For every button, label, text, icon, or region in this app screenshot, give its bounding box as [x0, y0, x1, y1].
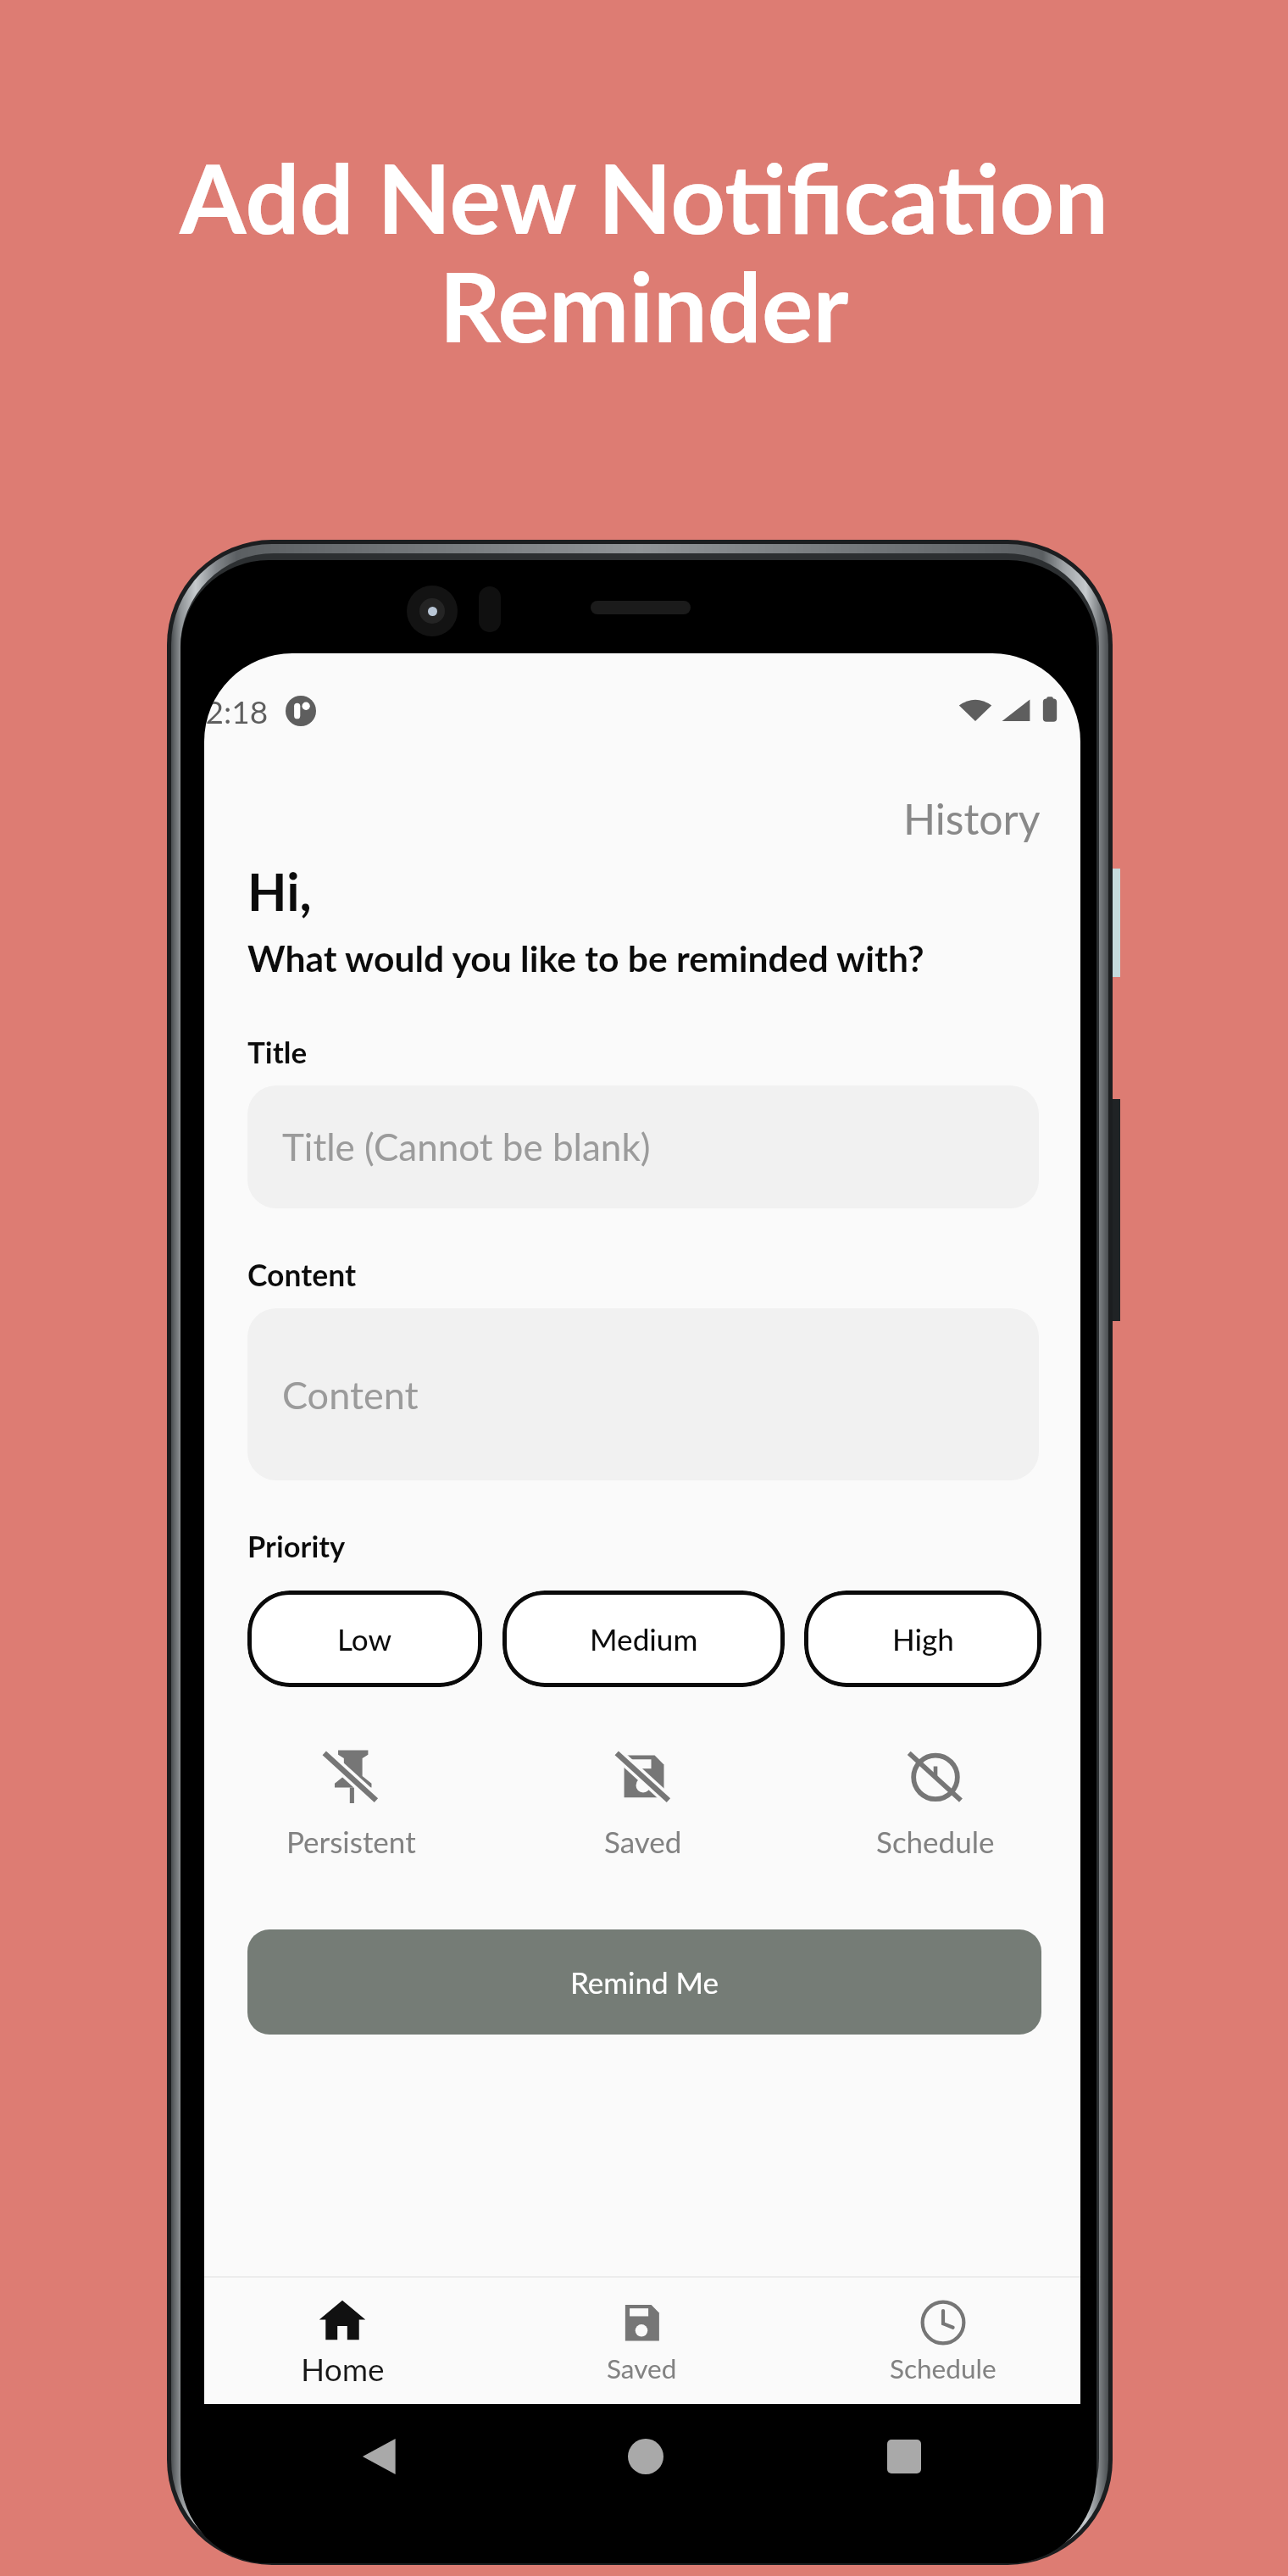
- button[interactable]: Recent apps: [886, 2439, 922, 2474]
- button[interactable]: Home: [627, 2438, 664, 2475]
- staticText: High: [892, 1621, 954, 1657]
- staticText: Hi,: [247, 860, 312, 922]
- staticText: Add New Notification Reminder: [180, 139, 1108, 363]
- staticText: History: [903, 793, 1041, 844]
- staticText: Remind Me: [570, 1964, 719, 2000]
- staticText: Home: [301, 2350, 385, 2387]
- button[interactable]: Schedule: [847, 2278, 1039, 2404]
- staticText: What would you like to be reminded with?: [247, 936, 924, 980]
- button[interactable]: Content: [247, 1308, 1039, 1480]
- staticText: Content: [282, 1372, 419, 1418]
- button[interactable]: Saved: [497, 1747, 789, 1859]
- staticText: Persistent: [286, 1824, 416, 1859]
- staticText: Title: [247, 1034, 308, 1069]
- staticText: Priority: [247, 1529, 346, 1563]
- staticText: Schedule: [890, 2352, 997, 2384]
- staticText: 12:18: [204, 692, 269, 730]
- staticText: Schedule: [876, 1824, 995, 1859]
- button[interactable]: Remind Me: [247, 1929, 1041, 2035]
- button[interactable]: Saved: [546, 2278, 737, 2404]
- staticText: Medium: [590, 1621, 698, 1657]
- button[interactable]: Persistent: [205, 1747, 497, 1859]
- staticText: Content: [247, 1257, 357, 1293]
- button[interactable]: Back: [362, 2438, 399, 2475]
- button[interactable]: History: [903, 793, 1041, 844]
- staticText: Saved: [604, 1824, 682, 1859]
- button[interactable]: Low: [247, 1591, 482, 1687]
- staticText: Saved: [607, 2352, 677, 2384]
- button[interactable]: Medium: [502, 1591, 785, 1687]
- button[interactable]: Schedule: [789, 1747, 1080, 1859]
- button[interactable]: High: [804, 1591, 1041, 1687]
- staticText: Low: [337, 1621, 392, 1657]
- button[interactable]: Title (Cannot be blank): [247, 1085, 1039, 1208]
- button[interactable]: Home: [247, 2278, 438, 2404]
- staticText: Title (Cannot be blank): [282, 1124, 651, 1169]
